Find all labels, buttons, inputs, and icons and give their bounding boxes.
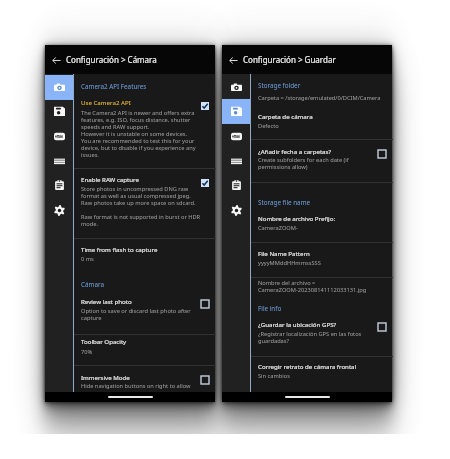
staticText: ¿Añadir fecha a carpetas? [258,147,332,155]
button[interactable]: Notes settings [222,173,250,198]
button[interactable]: Toggle [376,321,388,333]
button[interactable]: Toggle [199,374,211,386]
staticText: CameraZOOM- [258,224,298,232]
button[interactable]: Camera settings [222,75,250,100]
button[interactable]: General settings [45,198,73,223]
staticText: Configuración > Cámara [66,54,157,65]
button[interactable]: Interface settings [45,149,73,174]
staticText: Option to save or discard last photo aft… [81,307,191,322]
button[interactable]: Interface settings [222,149,250,174]
staticText: The Camera2 API is newer and offers extr… [81,109,196,159]
staticText: 70% [81,348,93,356]
button[interactable]: Notes settings [45,173,73,198]
staticText: Create subfolders for each date (if perm… [258,156,349,171]
staticText: Storage file name [258,198,311,207]
staticText: Carpeta = /storage/emulated/0/DCIM/Camer… [258,94,381,102]
staticText: Time from flash to capture [81,245,158,253]
staticText: 0 ms [81,255,94,263]
staticText: Configuración > Guardar [243,54,336,65]
button[interactable]: Save settings [222,99,250,124]
button[interactable]: Mode settings [45,124,73,149]
button[interactable]: Back [227,54,239,66]
button[interactable]: Toggle [199,177,211,189]
staticText: Hide navigation buttons on right to allo… [81,382,191,390]
button[interactable]: Back [45,45,215,74]
staticText: Nombre del archivo = CameraZOOM-20230814… [258,279,367,294]
staticText: Nombre de archivo Prefijo: [258,214,336,222]
staticText: Corregir retrato de cámara frontal [258,362,357,370]
staticText: ¿Registrar localización GPS en las fotos… [258,330,362,345]
staticText: Carpeta de cámara [258,112,313,120]
button[interactable]: Save settings [45,99,73,124]
staticText: yyyyMMddHHmmssSSS [258,259,321,267]
staticText: ¿Guardar la ubicación GPS? [258,320,337,328]
staticText: Review last photo [81,297,132,305]
staticText: Raw format is not supported in burst or … [81,213,201,228]
button[interactable]: Mode settings [222,124,250,149]
staticText: Toolbar Opacity [81,337,127,345]
button[interactable]: Camera settings [45,75,73,100]
button[interactable]: Toggle [199,100,211,112]
button[interactable]: Back [50,54,62,66]
button[interactable]: General settings [222,198,250,223]
staticText: Defecto [258,122,279,130]
staticText: Sin cambios [258,372,290,380]
staticText: Storage folder [258,81,301,90]
staticText: Camera2 API Features [81,82,147,91]
staticText: Immersive Mode [81,373,130,381]
button[interactable]: Toggle [199,298,211,310]
staticText: Use Camera2 API [81,98,131,106]
staticText: Enable RAW capture [81,175,139,183]
staticText: File Name Pattern [258,249,310,257]
button[interactable]: Back [222,45,392,74]
staticText: Cámara [81,280,104,289]
button[interactable]: Toggle [376,148,388,160]
staticText: Store photos in uncompressed DNG raw for… [81,185,196,207]
staticText: File info [258,304,282,313]
